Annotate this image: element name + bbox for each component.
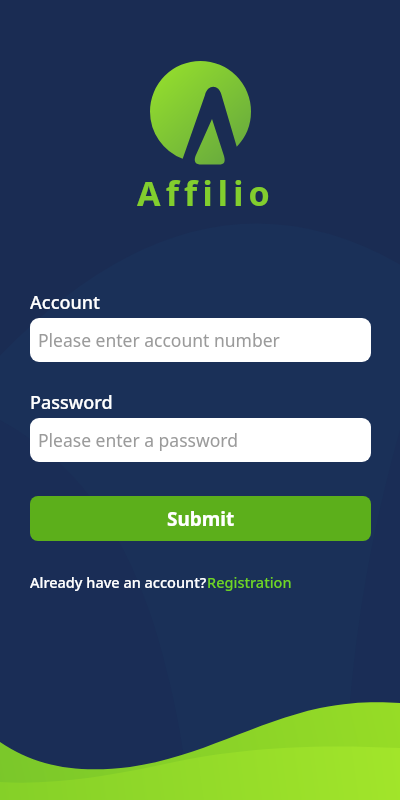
button[interactable]: Please enter a password [30, 418, 371, 462]
staticText: Submit [167, 506, 235, 532]
button[interactable]: Please enter account number [30, 318, 371, 362]
button[interactable]: Registration [207, 572, 292, 592]
staticText: Registration [207, 572, 292, 592]
staticText: Please enter account number [38, 328, 280, 352]
staticText: Password [30, 390, 113, 415]
staticText: Affilio [137, 170, 275, 216]
button[interactable]: Submit [30, 496, 371, 541]
staticText: Already have an account? [30, 572, 207, 592]
staticText: Account [30, 290, 100, 315]
staticText: Please enter a password [38, 428, 238, 452]
